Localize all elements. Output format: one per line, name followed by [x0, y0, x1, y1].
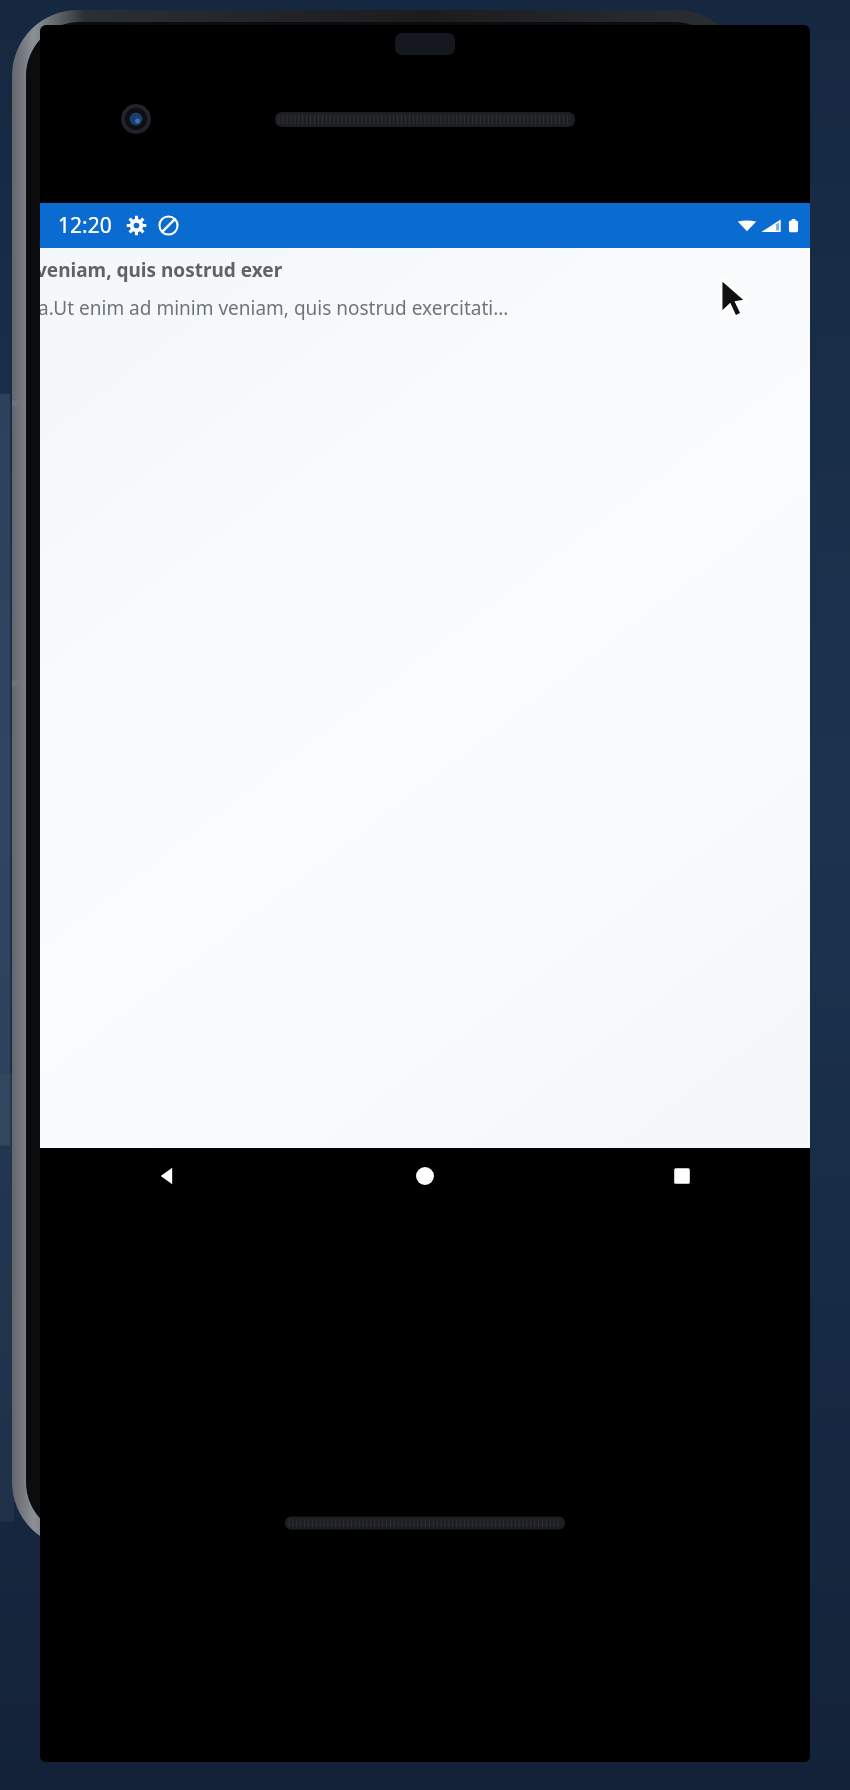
other: Do not disturb — [158, 215, 179, 236]
staticText: veniam, quis nostrud exer — [40, 257, 283, 283]
button[interactable]: a.Ut enim ad minim veniam, quis nostrud … — [40, 295, 810, 321]
staticText: 12:20 — [58, 211, 112, 240]
staticText: a.Ut enim ad minim veniam, quis nostrud … — [40, 295, 509, 321]
other: Settings — [126, 215, 147, 236]
button[interactable]: Home — [296, 1148, 553, 1204]
button[interactable]: Recent apps — [553, 1148, 810, 1204]
button[interactable]: veniam, quis nostrud exer — [40, 248, 810, 283]
button[interactable]: Back — [40, 1148, 296, 1204]
